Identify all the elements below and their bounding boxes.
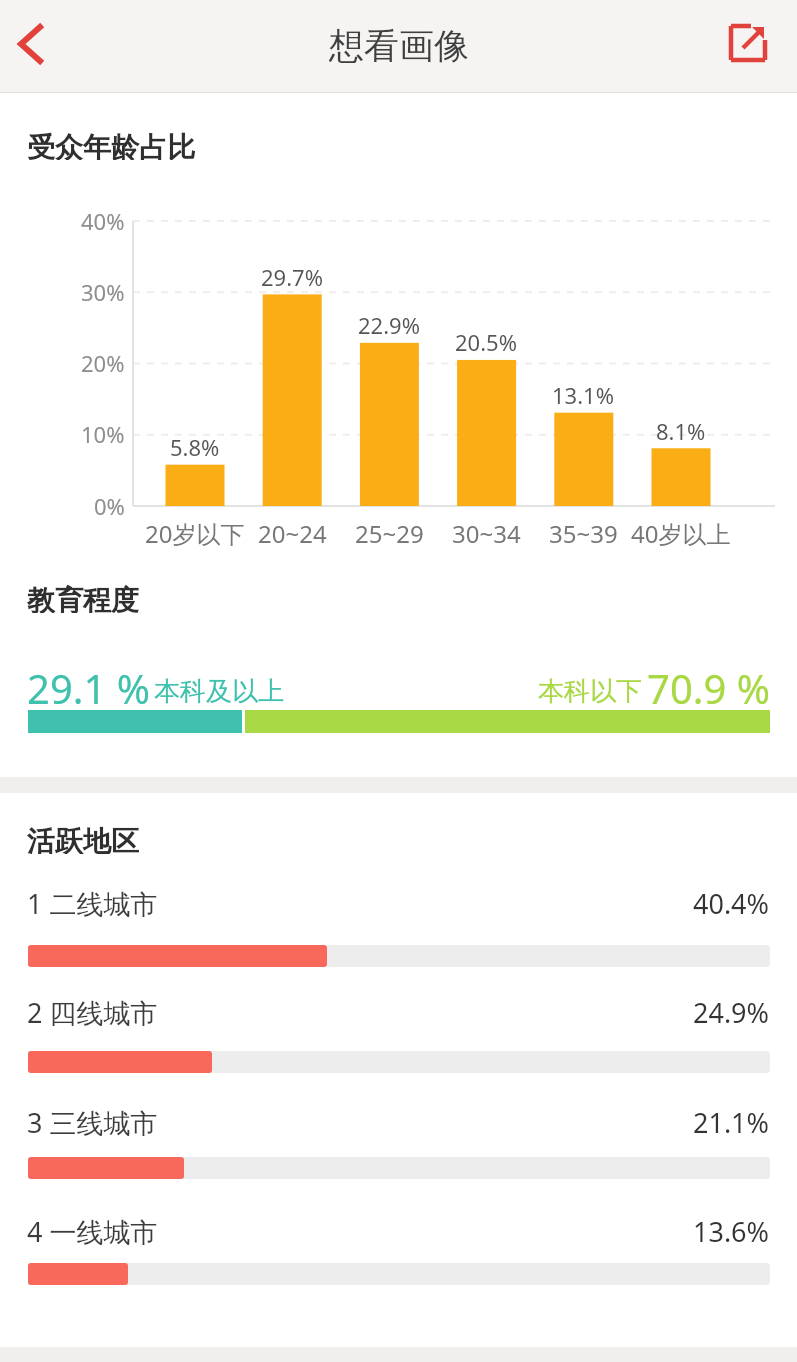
- staticText: 受众年龄占比: [27, 130, 195, 160]
- button[interactable]: [723, 18, 775, 70]
- staticText: 本科以下: [538, 675, 642, 705]
- staticText: 35~39: [549, 517, 618, 547]
- staticText: 8.1%: [656, 416, 706, 446]
- staticText: 活跃地区: [27, 824, 139, 854]
- staticText: 30~34: [452, 517, 521, 547]
- staticText: 2 四线城市: [27, 994, 158, 1026]
- staticText: 70.9 %: [647, 661, 770, 711]
- staticText: 24.9%: [693, 994, 770, 1026]
- staticText: 20.5%: [455, 327, 517, 357]
- staticText: 25~29: [355, 517, 424, 547]
- staticText: 本科及以上: [154, 675, 284, 705]
- staticText: 4 一线城市: [27, 1213, 158, 1245]
- staticText: 5.8%: [170, 432, 220, 462]
- staticText: 20岁以下: [145, 517, 245, 547]
- staticText: 3 三线城市: [27, 1104, 158, 1136]
- staticText: 40.4%: [693, 885, 770, 917]
- staticText: 20~24: [258, 517, 327, 547]
- staticText: 10%: [81, 419, 125, 449]
- staticText: 1 二线城市: [27, 885, 158, 917]
- staticText: 0%: [94, 491, 125, 521]
- staticText: 13.1%: [552, 380, 614, 410]
- staticText: 29.1 %: [27, 661, 150, 711]
- staticText: 40%: [81, 206, 125, 236]
- staticText: 21.1%: [693, 1104, 770, 1136]
- staticText: 想看画像: [329, 24, 469, 66]
- staticText: 20%: [81, 348, 125, 378]
- staticText: 30%: [81, 277, 125, 307]
- button[interactable]: [8, 16, 60, 72]
- staticText: 13.6%: [693, 1213, 770, 1245]
- staticText: 40岁以上: [631, 517, 731, 547]
- staticText: 22.9%: [358, 310, 420, 340]
- staticText: 29.7%: [261, 262, 323, 292]
- staticText: 教育程度: [27, 583, 139, 613]
